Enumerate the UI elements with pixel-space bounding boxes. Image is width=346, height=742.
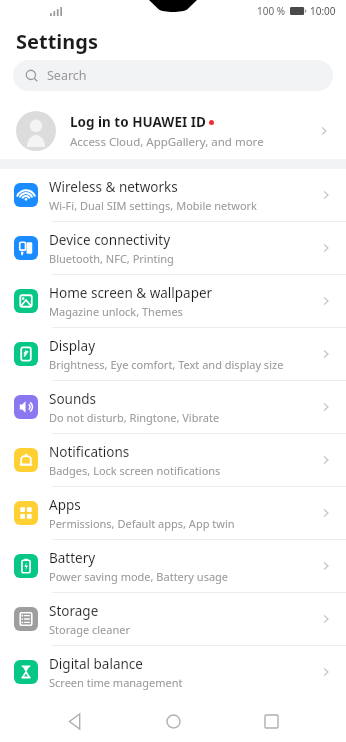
staticText: Wi-Fi, Dual SIM settings, Mobile network [49,198,257,213]
staticText: Notifications [49,443,130,461]
staticText: Log in to HUAWEI ID [70,113,206,131]
staticText: Device connectivity [49,231,171,249]
staticText: Settings [16,28,98,55]
staticText: Apps [49,496,81,514]
staticText: 10:00 [310,4,336,18]
staticText: Magazine unlock, Themes [49,304,183,319]
button[interactable]: Back [52,700,98,742]
staticText: Do not disturb, Ringtone, Vibrate [49,410,220,425]
staticText: Sounds [49,390,97,408]
staticText: Bluetooth, NFC, Printing [49,251,174,266]
staticText: Storage [49,602,99,620]
staticText: 100 % [257,4,286,18]
staticText: Screen time management [49,675,183,690]
staticText: Permissions, Default apps, App twin [49,516,235,531]
staticText: Search [47,67,87,84]
button[interactable]: Notifications [0,434,346,486]
staticText: Display [49,337,96,355]
staticText: Wireless & networks [49,178,178,196]
button[interactable]: Wireless & networks [0,169,346,221]
staticText: Brightness, Eye comfort, Text and displa… [49,357,284,372]
staticText: Battery [49,549,96,567]
button[interactable]: Recent apps [248,700,294,742]
staticText: Badges, Lock screen notifications [49,463,221,478]
button[interactable]: Storage [0,593,346,645]
button[interactable]: Home [150,700,196,742]
staticText: Home screen & wallpaper [49,284,213,302]
button[interactable]: Digital balance [0,646,346,698]
button[interactable]: Apps [0,487,346,539]
button[interactable]: Display [0,328,346,380]
button[interactable]: Home screen & wallpaper [0,275,346,327]
staticText: Power saving mode, Battery usage [49,569,229,584]
button[interactable]: Battery [0,540,346,592]
button[interactable]: Device connectivity [0,222,346,274]
staticText: Access Cloud, AppGallery, and more [70,134,264,150]
button[interactable]: Log in to HUAWEI ID [0,103,346,159]
button[interactable]: Sounds [0,381,346,433]
button[interactable]: Search [13,60,333,91]
staticText: Digital balance [49,655,143,673]
staticText: Storage cleaner [49,622,131,637]
